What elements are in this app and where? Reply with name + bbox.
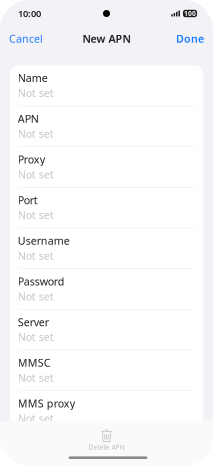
staticText: Not set [18, 330, 54, 344]
staticText: APN [18, 112, 39, 126]
staticText: Done [176, 31, 204, 46]
staticText: Cancel [9, 31, 43, 46]
button[interactable]: Password [10, 269, 203, 310]
staticText: Not set [18, 371, 54, 385]
button[interactable]: Cancel [0, 27, 43, 50]
staticText: MMSC [18, 356, 51, 370]
staticText: Delete APN [88, 443, 124, 452]
staticText: Not set [18, 289, 54, 303]
staticText: Not set [18, 411, 54, 425]
button[interactable]: Username [10, 228, 203, 269]
button[interactable]: Delete APN [0, 421, 213, 452]
staticText: 10:00 [18, 7, 41, 20]
button[interactable]: Name [10, 65, 203, 106]
staticText: Not set [18, 208, 54, 222]
button[interactable]: Done [176, 27, 213, 50]
staticText: Not set [18, 126, 54, 141]
staticText: Not set [18, 167, 54, 181]
staticText: Not set [18, 86, 54, 100]
staticText: Port [18, 193, 38, 207]
staticText: 100 [184, 9, 196, 18]
staticText: Not set [18, 452, 54, 466]
staticText: Not set [18, 248, 54, 263]
staticText: New APN [82, 31, 130, 46]
button[interactable]: MMS port [10, 431, 203, 466]
staticText: Proxy [18, 152, 45, 166]
staticText: Name [18, 71, 48, 85]
button[interactable]: Port [10, 187, 203, 228]
staticText: Password [18, 274, 65, 288]
staticText: Username [18, 234, 70, 248]
button[interactable]: MMSC [10, 350, 203, 391]
button[interactable]: MMS proxy [10, 391, 203, 432]
staticText: Server [18, 315, 49, 329]
button[interactable]: APN [10, 106, 203, 147]
button[interactable]: Proxy [10, 147, 203, 187]
button[interactable]: Server [10, 309, 203, 350]
staticText: MMS proxy [18, 396, 75, 410]
